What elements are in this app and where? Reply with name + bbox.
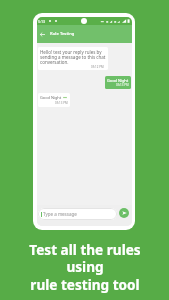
button[interactable]: Back <box>38 30 47 39</box>
staticText: 05:13 PM <box>55 101 68 105</box>
staticText: 05:12 PM <box>91 65 104 69</box>
staticText: Good Night <box>40 95 62 100</box>
staticText: Good Night <box>107 78 129 83</box>
button[interactable]: Type a message <box>38 208 117 220</box>
button[interactable]: Send <box>119 208 129 218</box>
staticText: Hello! test your reply rules by sending … <box>40 49 106 65</box>
staticText: Rule Testing <box>50 31 75 37</box>
staticText: 5:13 <box>38 19 46 24</box>
staticText: Test all the rules using rule testing to… <box>29 240 141 294</box>
staticText: Type a message <box>43 211 77 217</box>
staticText: 05:13 PM <box>116 83 129 87</box>
